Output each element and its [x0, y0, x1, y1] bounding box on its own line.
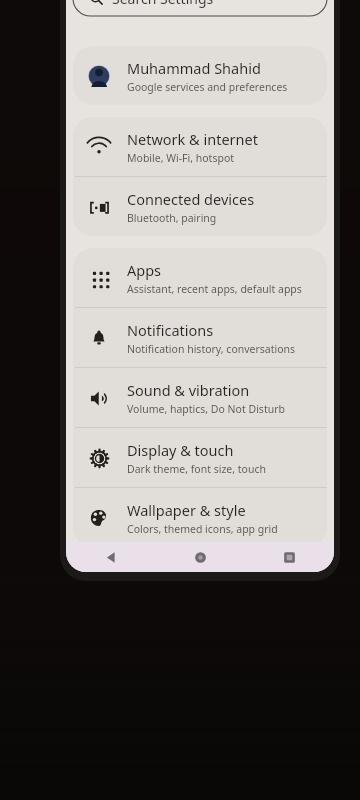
button[interactable]: Connected devices	[73, 177, 327, 236]
button[interactable]: Recent apps	[245, 542, 334, 572]
staticText: Apps	[127, 260, 162, 280]
staticText: Display & touch	[127, 440, 234, 460]
button[interactable]: Search Settings	[73, 0, 327, 16]
button[interactable]: Display & touch	[73, 428, 327, 487]
button[interactable]: Notifications	[73, 308, 327, 367]
staticText: Bluetooth, pairing	[127, 211, 217, 225]
button[interactable]: Home	[156, 542, 245, 572]
staticText: Wallpaper & style	[127, 500, 246, 520]
staticText: Assistant, recent apps, default apps	[127, 282, 302, 296]
staticText: Notifications	[127, 320, 214, 340]
staticText: Sound & vibration	[127, 380, 250, 400]
staticText: Connected devices	[127, 189, 255, 209]
staticText: Dark theme, font size, touch	[127, 462, 266, 476]
button[interactable]: Network & internet	[73, 117, 327, 176]
staticText: Mobile, Wi-Fi, hotspot	[127, 151, 235, 165]
button[interactable]: Sound & vibration	[73, 368, 327, 427]
staticText: Volume, haptics, Do Not Disturb	[127, 402, 285, 416]
staticText: Search Settings	[112, 0, 214, 8]
staticText: Network & internet	[127, 129, 258, 149]
staticText: Google services and preferences	[127, 80, 288, 94]
button[interactable]: Muhammad Shahid	[73, 46, 327, 105]
button[interactable]: Apps	[73, 248, 327, 307]
staticText: Notification history, conversations	[127, 342, 296, 356]
button[interactable]: Wallpaper & style	[73, 488, 327, 547]
button[interactable]: Back	[66, 542, 156, 572]
staticText: Colors, themed icons, app grid	[127, 522, 278, 536]
staticText: Muhammad Shahid	[127, 58, 261, 78]
